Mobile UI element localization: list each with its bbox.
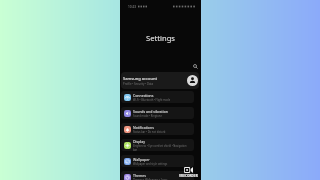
staticText: Settings [120,33,201,43]
button[interactable]: Themes [121,171,194,180]
button[interactable]: Connections [121,91,194,103]
staticText: Display [133,139,145,144]
staticText: Sounds and vibration [133,109,168,114]
staticText: Sound mode • Ringtone [133,114,162,118]
staticText: Wallpaper [133,157,150,162]
staticText: Themes [133,173,147,178]
staticText: Status bar • Do not disturb [133,130,166,134]
staticText: VRECORDER [179,174,198,178]
staticText: Brightness • Eye comfort shield • Naviga… [133,144,191,151]
button[interactable]: Notifications [121,123,194,135]
staticText: 10:23 [128,5,137,9]
staticText: Profile • Security • Data [123,82,154,86]
staticText: Connections [133,93,154,98]
button[interactable]: Profile [187,75,198,86]
staticText: Notifications [133,125,154,130]
button[interactable]: Wallpaper [121,155,194,167]
staticText: Themes • Wallpapers • Icons [133,178,168,180]
button[interactable]: Search [192,63,199,70]
staticText: Samsung account [123,76,157,81]
button[interactable]: Sounds and vibration [121,107,194,119]
staticText: Wi-Fi • Bluetooth • Flight mode [133,98,171,102]
staticText: Wallpaper and style settings [133,162,168,166]
button[interactable]: Samsung account [121,72,199,89]
button[interactable]: Display [121,139,194,151]
